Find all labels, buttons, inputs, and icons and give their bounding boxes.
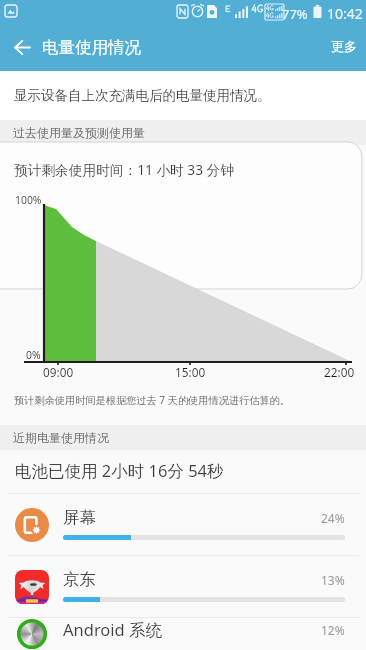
- staticText: 电量使用情况: [42, 37, 141, 58]
- staticText: 过去使用量及预测使用量: [13, 125, 145, 140]
- staticText: 24%: [321, 510, 345, 526]
- button[interactable]: 京东: [0, 556, 366, 617]
- staticText: 更多: [331, 39, 357, 55]
- staticText: 12%: [321, 622, 345, 638]
- staticText: 预计剩余使用时间：11 小时 33 分钟: [14, 160, 234, 179]
- staticText: 电池已使用 2小时 16分 54秒: [15, 459, 224, 482]
- staticText: 近期电量使用情况: [13, 430, 109, 445]
- button[interactable]: 更多: [319, 26, 366, 71]
- staticText: 10:42: [327, 4, 363, 23]
- staticText: 22:00: [324, 364, 355, 380]
- staticText: 09:00: [43, 364, 74, 380]
- button[interactable]: Back: [2, 27, 42, 67]
- staticText: 0%: [26, 348, 41, 362]
- staticText: Android 系统: [63, 618, 163, 641]
- staticText: 京东: [63, 569, 96, 590]
- button[interactable]: Android 系统: [0, 618, 366, 650]
- staticText: 预计剩余使用时间是根据您过去 7 天的使用情况进行估算的。: [14, 393, 290, 407]
- button[interactable]: 屏幕: [0, 494, 366, 555]
- staticText: 显示设备自上次充满电后的电量使用情况。: [14, 87, 271, 104]
- staticText: 100%: [15, 193, 42, 207]
- staticText: 13%: [321, 572, 345, 588]
- staticText: 77%: [282, 5, 308, 23]
- staticText: 屏幕: [63, 507, 96, 528]
- staticText: 15:00: [175, 364, 206, 380]
